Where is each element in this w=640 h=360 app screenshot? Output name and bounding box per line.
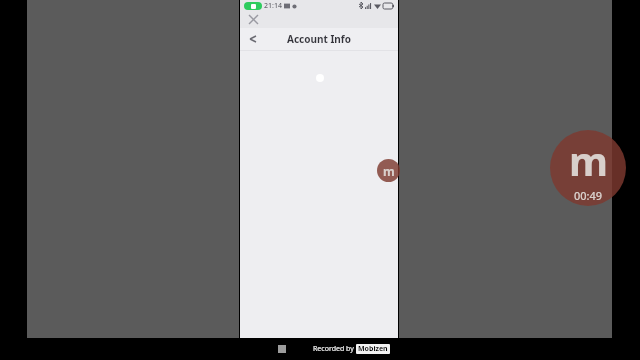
button[interactable]: Close: [247, 13, 260, 26]
staticText: 00:49: [574, 188, 603, 203]
staticText: 21:14: [264, 1, 282, 11]
staticText: Mobizen: [358, 344, 388, 354]
staticText: Account Info: [287, 32, 351, 46]
button[interactable]: Back: [246, 32, 260, 46]
staticText: Recorded by: [313, 344, 356, 354]
staticText: m: [383, 163, 395, 179]
staticText: m: [569, 133, 608, 187]
